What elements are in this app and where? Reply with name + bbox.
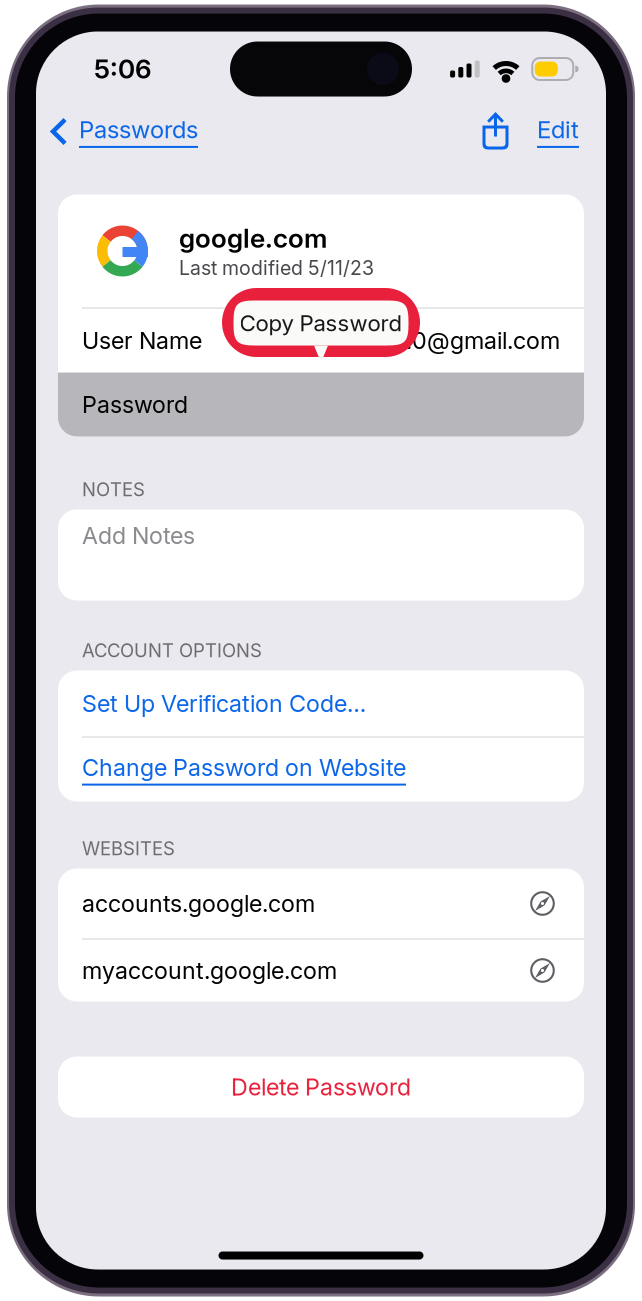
staticText: Add Notes (82, 521, 195, 550)
button[interactable]: Edit (531, 104, 585, 159)
button[interactable]: Set Up Verification Code… (58, 670, 584, 736)
staticText: Set Up Verification Code… (82, 689, 366, 718)
staticText: WEBSITES (82, 837, 175, 860)
staticText: Edit (537, 115, 579, 144)
staticText: Delete Password (231, 1073, 411, 1101)
staticText: Copy Password (239, 309, 402, 336)
button[interactable]: accounts.google.com (58, 868, 584, 938)
button[interactable]: Share (471, 105, 520, 157)
button[interactable]: Change Password on Website (58, 737, 584, 801)
button[interactable]: myaccount.google.com (58, 939, 584, 1001)
staticText: google.com (179, 222, 327, 254)
staticText: Last modified 5/11/23 (179, 256, 374, 280)
staticText: …0@gmail.com (393, 326, 560, 355)
staticText: accounts.google.com (82, 889, 315, 918)
staticText: Passwords (79, 115, 198, 144)
button[interactable]: Delete Password (58, 1056, 584, 1117)
button[interactable]: Passwords (36, 106, 210, 156)
staticText: myaccount.google.com (82, 956, 337, 985)
staticText: Password (82, 390, 188, 419)
staticText: 5:06 (94, 53, 152, 85)
staticText: ACCOUNT OPTIONS (82, 639, 262, 662)
staticText: User Name (82, 326, 202, 355)
staticText: NOTES (82, 478, 145, 501)
staticText: Change Password on Website (82, 753, 406, 782)
